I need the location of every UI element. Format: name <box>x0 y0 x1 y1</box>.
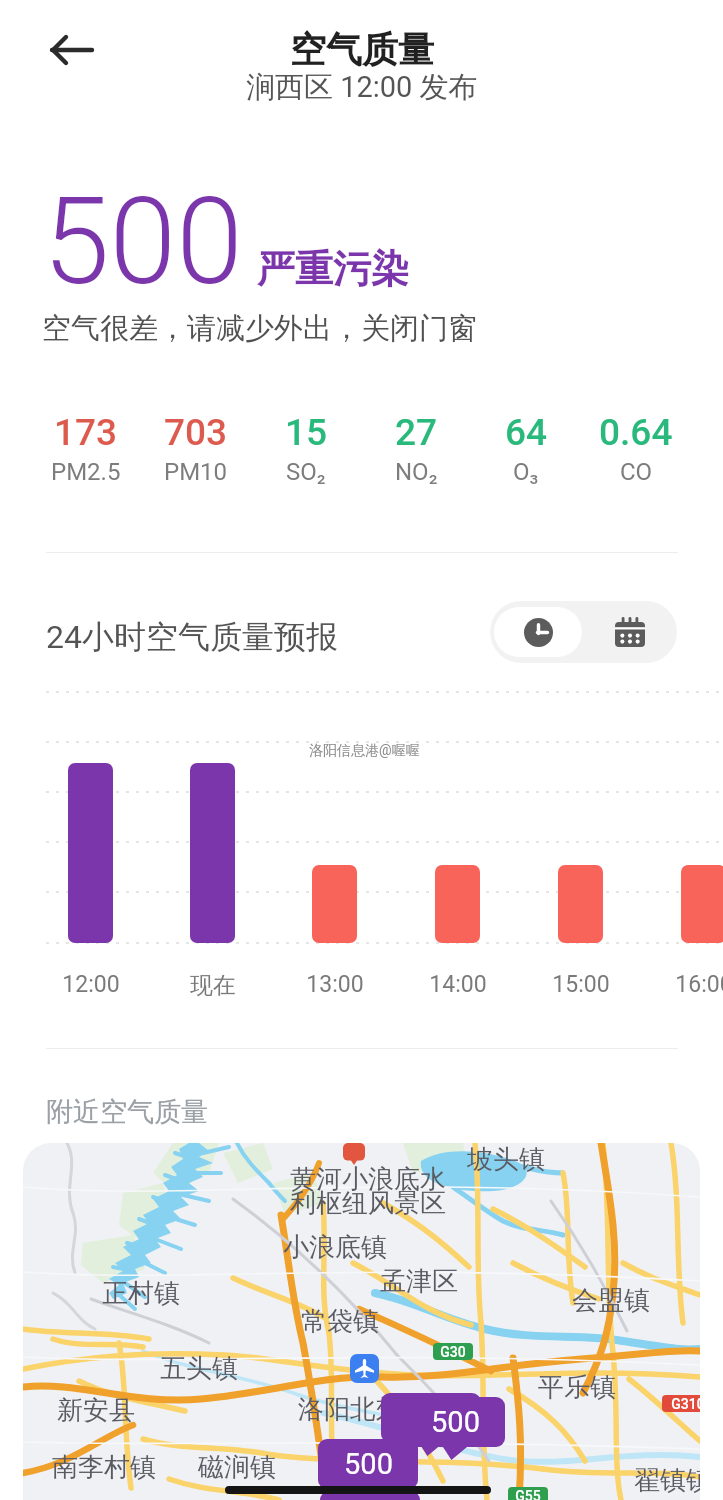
staticText: 27 <box>395 411 438 454</box>
staticText: CO <box>620 458 653 486</box>
staticText: 500 <box>344 1447 393 1481</box>
staticText: NO₂ <box>395 458 438 486</box>
staticText: 常袋镇 <box>301 1305 379 1338</box>
staticText: 磁涧镇 <box>198 1451 276 1484</box>
staticText: 黄河小浪底水 <box>290 1163 446 1196</box>
button[interactable]: Daily forecast <box>582 601 677 663</box>
button[interactable]: Hourly forecast <box>494 607 582 657</box>
staticText: G310 <box>671 1396 700 1412</box>
button[interactable]: Nearby air quality map <box>23 1143 700 1500</box>
staticText: 703 <box>164 411 228 454</box>
staticText: 洛阳北郊机 <box>298 1393 428 1426</box>
staticText: 500 <box>43 172 243 313</box>
button[interactable]: Back <box>44 22 100 78</box>
staticText: 附近空气质量 <box>46 1095 208 1129</box>
staticText: 14:00 <box>429 971 487 998</box>
staticText: 12:00 <box>62 971 120 998</box>
staticText: 洛阳信息港@喔喔 <box>309 742 420 760</box>
staticText: 孟津区 <box>380 1265 458 1298</box>
staticText: 173 <box>54 411 118 454</box>
staticText: 0.64 <box>599 411 673 454</box>
staticText: 正村镇 <box>102 1277 180 1310</box>
staticText: 500 <box>407 1401 456 1435</box>
staticText: 24小时空气质量预报 <box>46 617 338 657</box>
staticText: 坡头镇 <box>467 1143 545 1176</box>
staticText: 15:00 <box>552 971 610 998</box>
staticText: 会盟镇 <box>572 1284 650 1317</box>
staticText: 16:00 <box>675 971 723 998</box>
staticText: 南李村镇 <box>52 1451 156 1484</box>
staticText: PM2.5 <box>51 458 121 486</box>
staticText: 500 <box>431 1405 480 1439</box>
staticText: G55 <box>515 1488 541 1500</box>
staticText: 64 <box>505 411 548 454</box>
staticText: 严重污染 <box>257 245 409 293</box>
staticText: 现在 <box>190 971 236 1000</box>
staticText: SO₂ <box>286 458 326 486</box>
staticText: PM10 <box>164 458 228 486</box>
staticText: 新安县 <box>57 1394 135 1427</box>
staticText: 翟镇镇 <box>634 1464 700 1497</box>
staticText: 13:00 <box>306 971 364 998</box>
staticText: 小浪底镇 <box>283 1231 387 1264</box>
staticText: 五头镇 <box>160 1352 238 1385</box>
staticText: 空气质量 <box>290 27 434 72</box>
staticText: 15 <box>285 411 328 454</box>
staticText: O₃ <box>513 458 539 486</box>
staticText: 平乐镇 <box>538 1371 616 1404</box>
staticText: 空气很差，请减少外出，关闭门窗 <box>42 310 477 347</box>
staticText: 利枢纽风景区 <box>290 1187 446 1220</box>
staticText: G30 <box>440 1344 466 1360</box>
staticText: 涧西区 12:00 发布 <box>246 69 478 106</box>
